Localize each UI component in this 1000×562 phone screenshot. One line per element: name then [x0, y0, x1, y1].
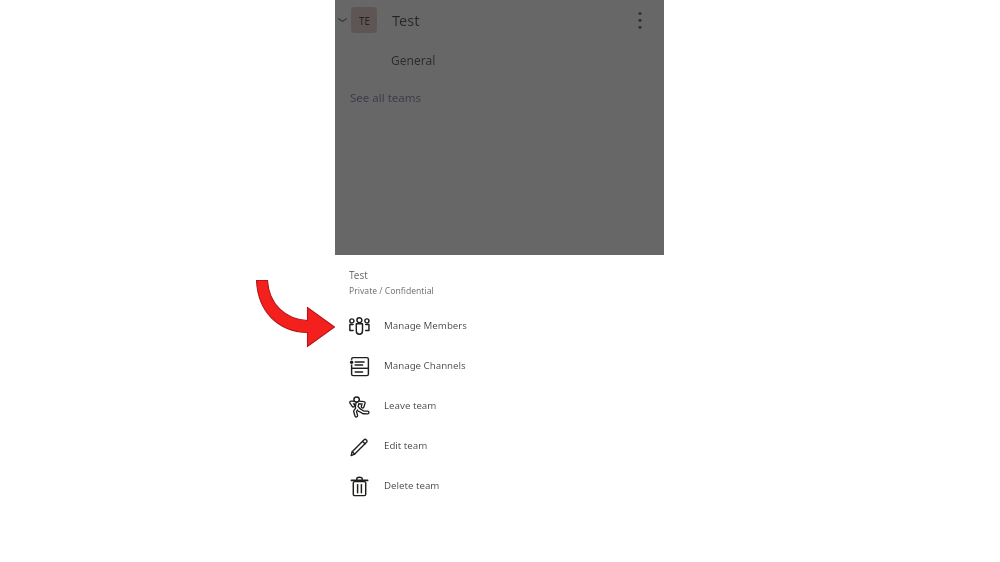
- staticText: Test: [349, 268, 368, 282]
- staticText: TE: [359, 14, 371, 28]
- button[interactable]: Manage Channels: [335, 346, 664, 386]
- button[interactable]: Edit team: [335, 426, 664, 466]
- staticText: Leave team: [384, 399, 437, 412]
- button[interactable]: Delete team: [335, 466, 664, 506]
- staticText: Delete team: [384, 479, 440, 492]
- staticText: See all teams: [350, 90, 422, 106]
- staticText: General: [391, 52, 436, 68]
- button[interactable]: More options: [622, 2, 658, 38]
- staticText: Manage Channels: [384, 359, 466, 372]
- staticText: Private / Confidential: [349, 285, 434, 297]
- button[interactable]: Collapse team: [335, 2, 382, 38]
- staticText: Manage Members: [384, 319, 467, 332]
- staticText: Test: [392, 10, 420, 30]
- button[interactable]: Manage Members: [335, 306, 664, 346]
- button[interactable]: Leave team: [335, 386, 664, 426]
- staticText: Edit team: [384, 439, 428, 452]
